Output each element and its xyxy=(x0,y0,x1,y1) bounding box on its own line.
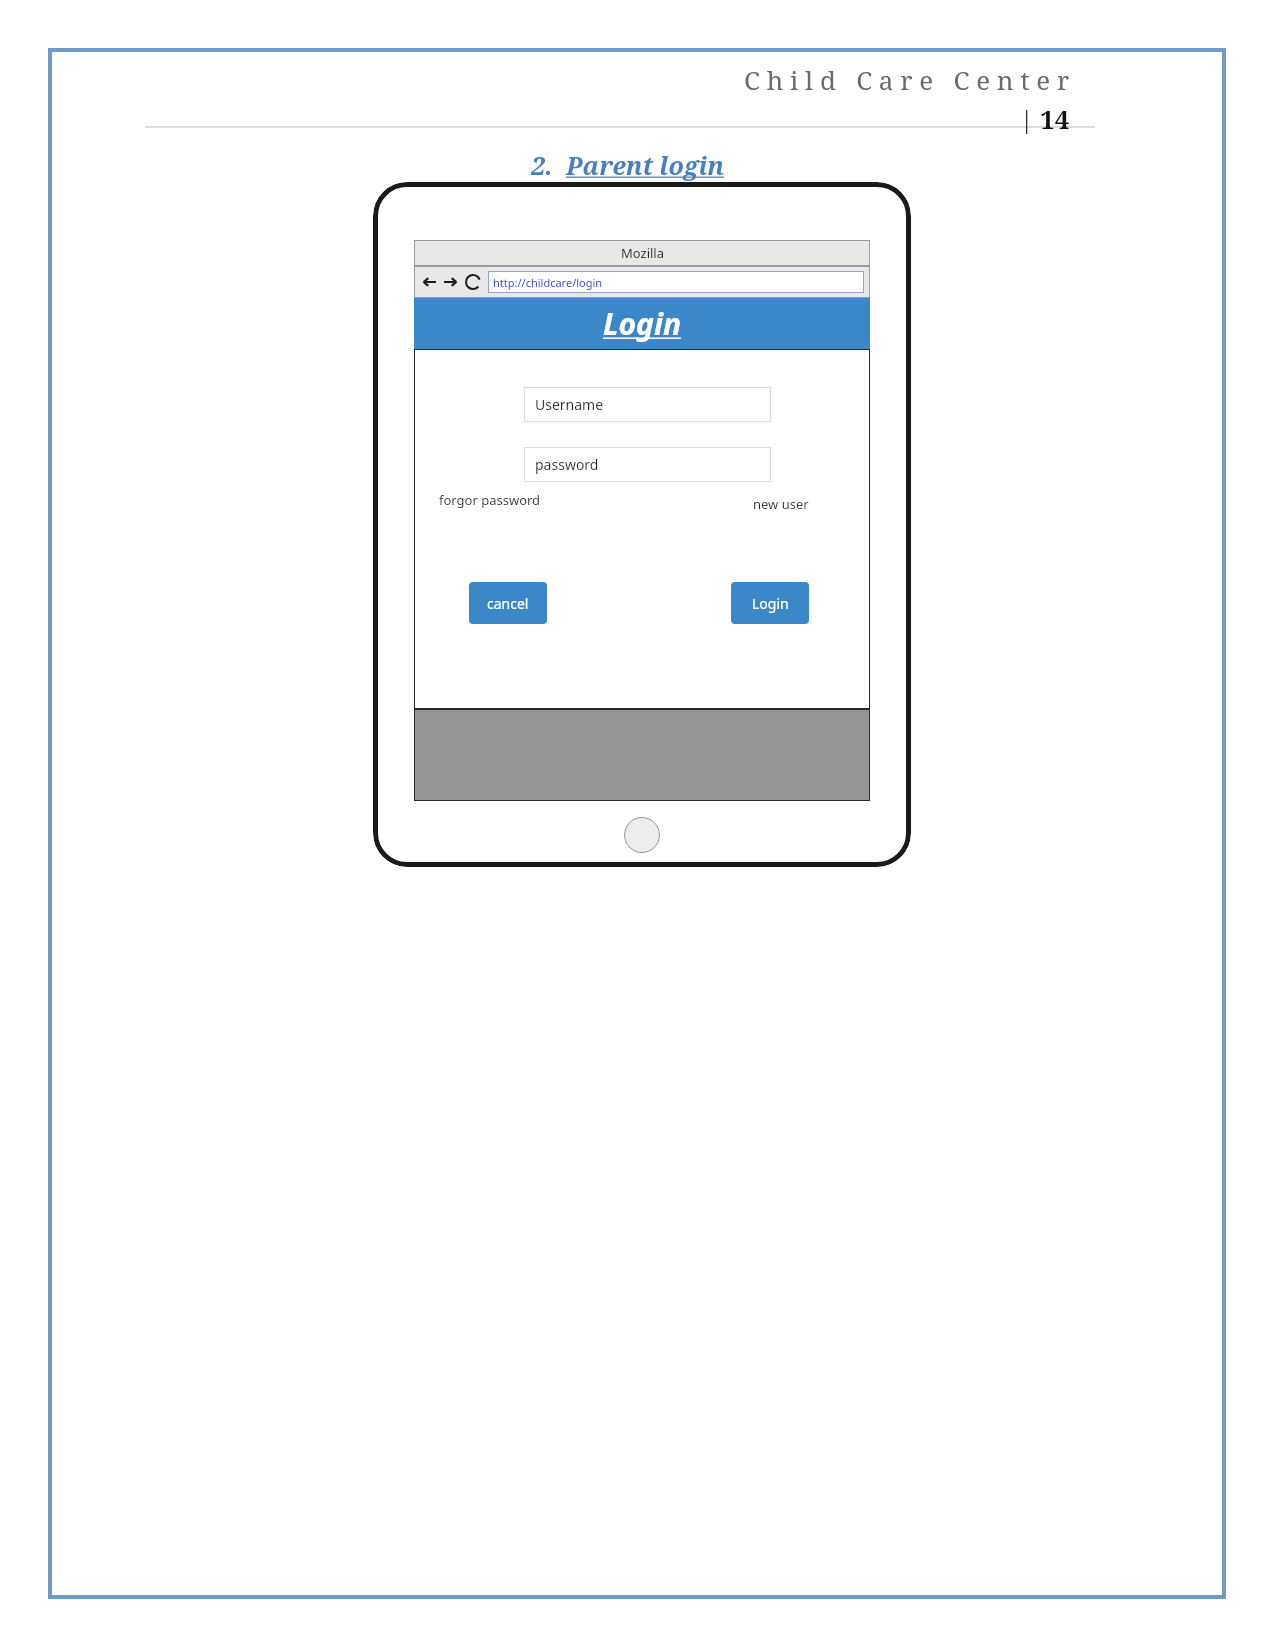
staticText: password xyxy=(535,455,599,474)
button[interactable]: cancel xyxy=(469,582,547,624)
staticText: new user xyxy=(753,495,809,513)
button[interactable]: Home xyxy=(624,817,660,853)
staticText: | xyxy=(1020,102,1040,135)
button[interactable]: password xyxy=(524,447,771,482)
staticText: Login xyxy=(752,594,789,613)
staticText: Username xyxy=(535,395,604,414)
button[interactable]: 2. xyxy=(531,148,725,182)
button[interactable]: http://childcare/login xyxy=(488,271,864,293)
button[interactable]: new user xyxy=(753,495,809,513)
button[interactable]: Reload xyxy=(464,273,482,291)
staticText: Mozilla xyxy=(621,244,664,262)
staticText: cancel xyxy=(487,594,529,613)
button[interactable]: Forward xyxy=(442,273,460,291)
staticText: http://childcare/login xyxy=(493,275,603,290)
staticText: C h i l d C a r e C e n t e r xyxy=(744,62,1070,97)
button[interactable]: Login xyxy=(731,582,809,624)
button[interactable]: Back xyxy=(420,273,438,291)
staticText: forgor password xyxy=(439,491,541,509)
staticText: 14 xyxy=(1040,101,1070,136)
staticText: Parent login xyxy=(566,148,725,182)
staticText: 2. xyxy=(531,148,566,182)
button[interactable]: Username xyxy=(524,387,771,422)
staticText: Login xyxy=(603,303,682,344)
button[interactable]: forgor password xyxy=(439,491,541,509)
